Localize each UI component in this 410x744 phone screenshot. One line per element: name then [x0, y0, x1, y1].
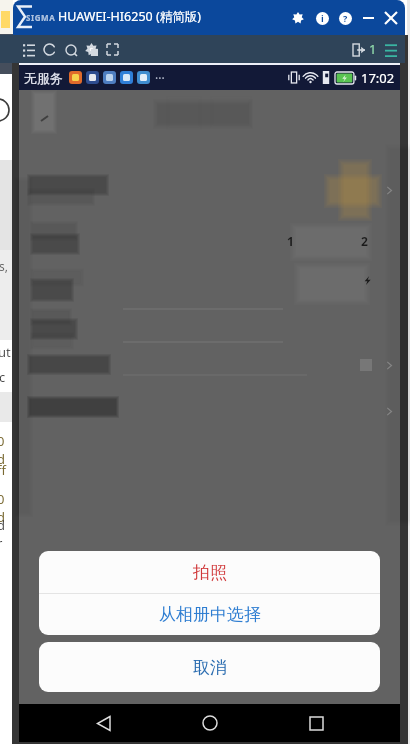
staticText: 无服务	[24, 70, 63, 86]
button[interactable]: Back	[81, 704, 125, 742]
staticText: s,	[0, 258, 8, 274]
button[interactable]: Help	[334, 7, 356, 29]
staticText: ···	[155, 70, 165, 86]
staticText: 0d	[0, 490, 10, 526]
button[interactable]: Home	[188, 704, 232, 742]
button[interactable]: Rotate	[39, 39, 60, 60]
button[interactable]: Info	[311, 7, 333, 29]
staticText: ff	[0, 461, 6, 479]
staticText: 取消	[193, 657, 227, 678]
staticText: ut	[0, 343, 11, 361]
button[interactable]: Fullscreen	[102, 39, 123, 60]
button[interactable]: Zoom	[60, 39, 81, 60]
button[interactable]: Minimize	[357, 7, 379, 29]
staticText: 从相册中选择	[159, 604, 261, 625]
staticText: c	[0, 368, 6, 386]
staticText: 1	[369, 40, 377, 58]
button[interactable]: 拍照	[39, 551, 380, 593]
staticText: 1	[287, 233, 294, 249]
staticText: ?	[343, 12, 348, 24]
staticText: 拍照	[193, 562, 227, 583]
staticText: i	[321, 12, 324, 24]
button[interactable]: 取消	[39, 642, 380, 692]
button[interactable]: Close	[380, 7, 402, 29]
staticText: 2	[361, 233, 368, 249]
button[interactable]: List	[18, 39, 39, 60]
staticText: 17:02	[361, 69, 395, 87]
button[interactable]: Export	[348, 39, 369, 60]
button[interactable]: Settings	[287, 7, 309, 29]
button[interactable]: Menu	[380, 39, 401, 60]
button[interactable]: Tools	[81, 39, 102, 60]
staticText: HUAWEI-HI6250 (精简版)	[58, 8, 201, 25]
staticText: SIGMA	[26, 12, 56, 23]
staticText: 0d	[0, 432, 10, 468]
button[interactable]: 从相册中选择	[39, 594, 380, 635]
staticText: dr	[0, 516, 10, 552]
button[interactable]: Recents	[294, 704, 338, 742]
